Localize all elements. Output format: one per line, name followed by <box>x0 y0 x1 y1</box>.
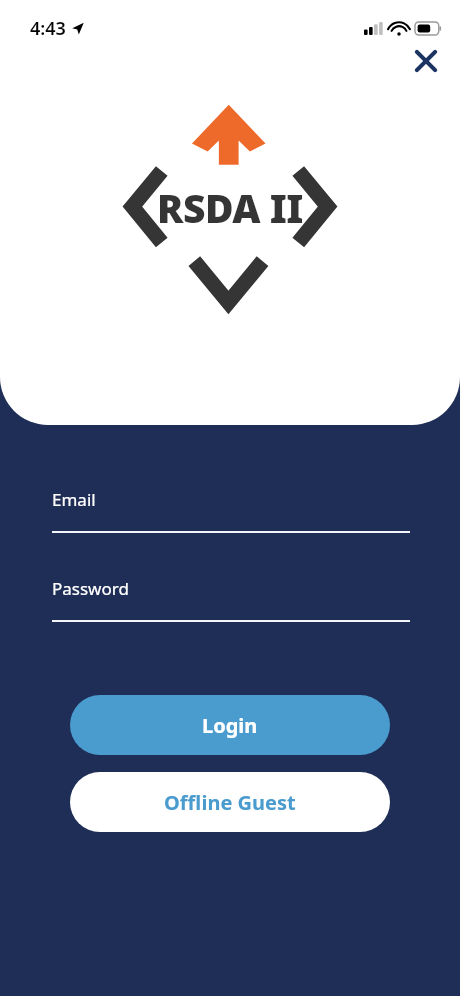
staticText: Email <box>52 488 96 511</box>
button[interactable]: Offline Guest <box>70 772 390 832</box>
button[interactable]: Password <box>52 577 410 622</box>
button[interactable]: Email <box>52 488 410 533</box>
button[interactable]: Login <box>70 695 390 755</box>
staticText: 4:43 <box>30 16 66 41</box>
staticText: Password <box>52 577 129 600</box>
staticText: Login <box>202 712 258 739</box>
staticText: RSDA II <box>125 181 335 234</box>
staticText: Offline Guest <box>164 789 296 816</box>
button[interactable]: Close <box>406 41 446 81</box>
